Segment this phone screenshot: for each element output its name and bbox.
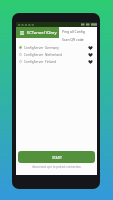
button[interactable]: ConfigServer Finland (16, 58, 97, 65)
staticText: ConfigServer Germany (24, 46, 59, 50)
staticText: ConfigServer Netherland (24, 53, 63, 57)
button[interactable]: Menu (18, 29, 25, 36)
staticText: START (52, 155, 62, 160)
staticText: ECTunnel V2ray (27, 30, 57, 35)
button[interactable]: START (18, 151, 95, 163)
staticText: Ping all Config (62, 29, 85, 34)
button[interactable]: Scan QR code (59, 35, 97, 43)
button[interactable]: Favourite (88, 59, 93, 64)
button[interactable]: Favourite (88, 45, 93, 50)
staticText: ConfigServer Finland (24, 60, 57, 64)
staticText: Scan QR code (62, 37, 84, 42)
button[interactable]: Ping all Config (59, 27, 97, 35)
button[interactable]: ConfigServer Germany (16, 44, 97, 51)
button[interactable]: ConfigServer Netherland (16, 51, 97, 58)
button[interactable]: Favourite (88, 52, 93, 57)
staticText: disconnect vpn to protect connection (16, 165, 97, 169)
